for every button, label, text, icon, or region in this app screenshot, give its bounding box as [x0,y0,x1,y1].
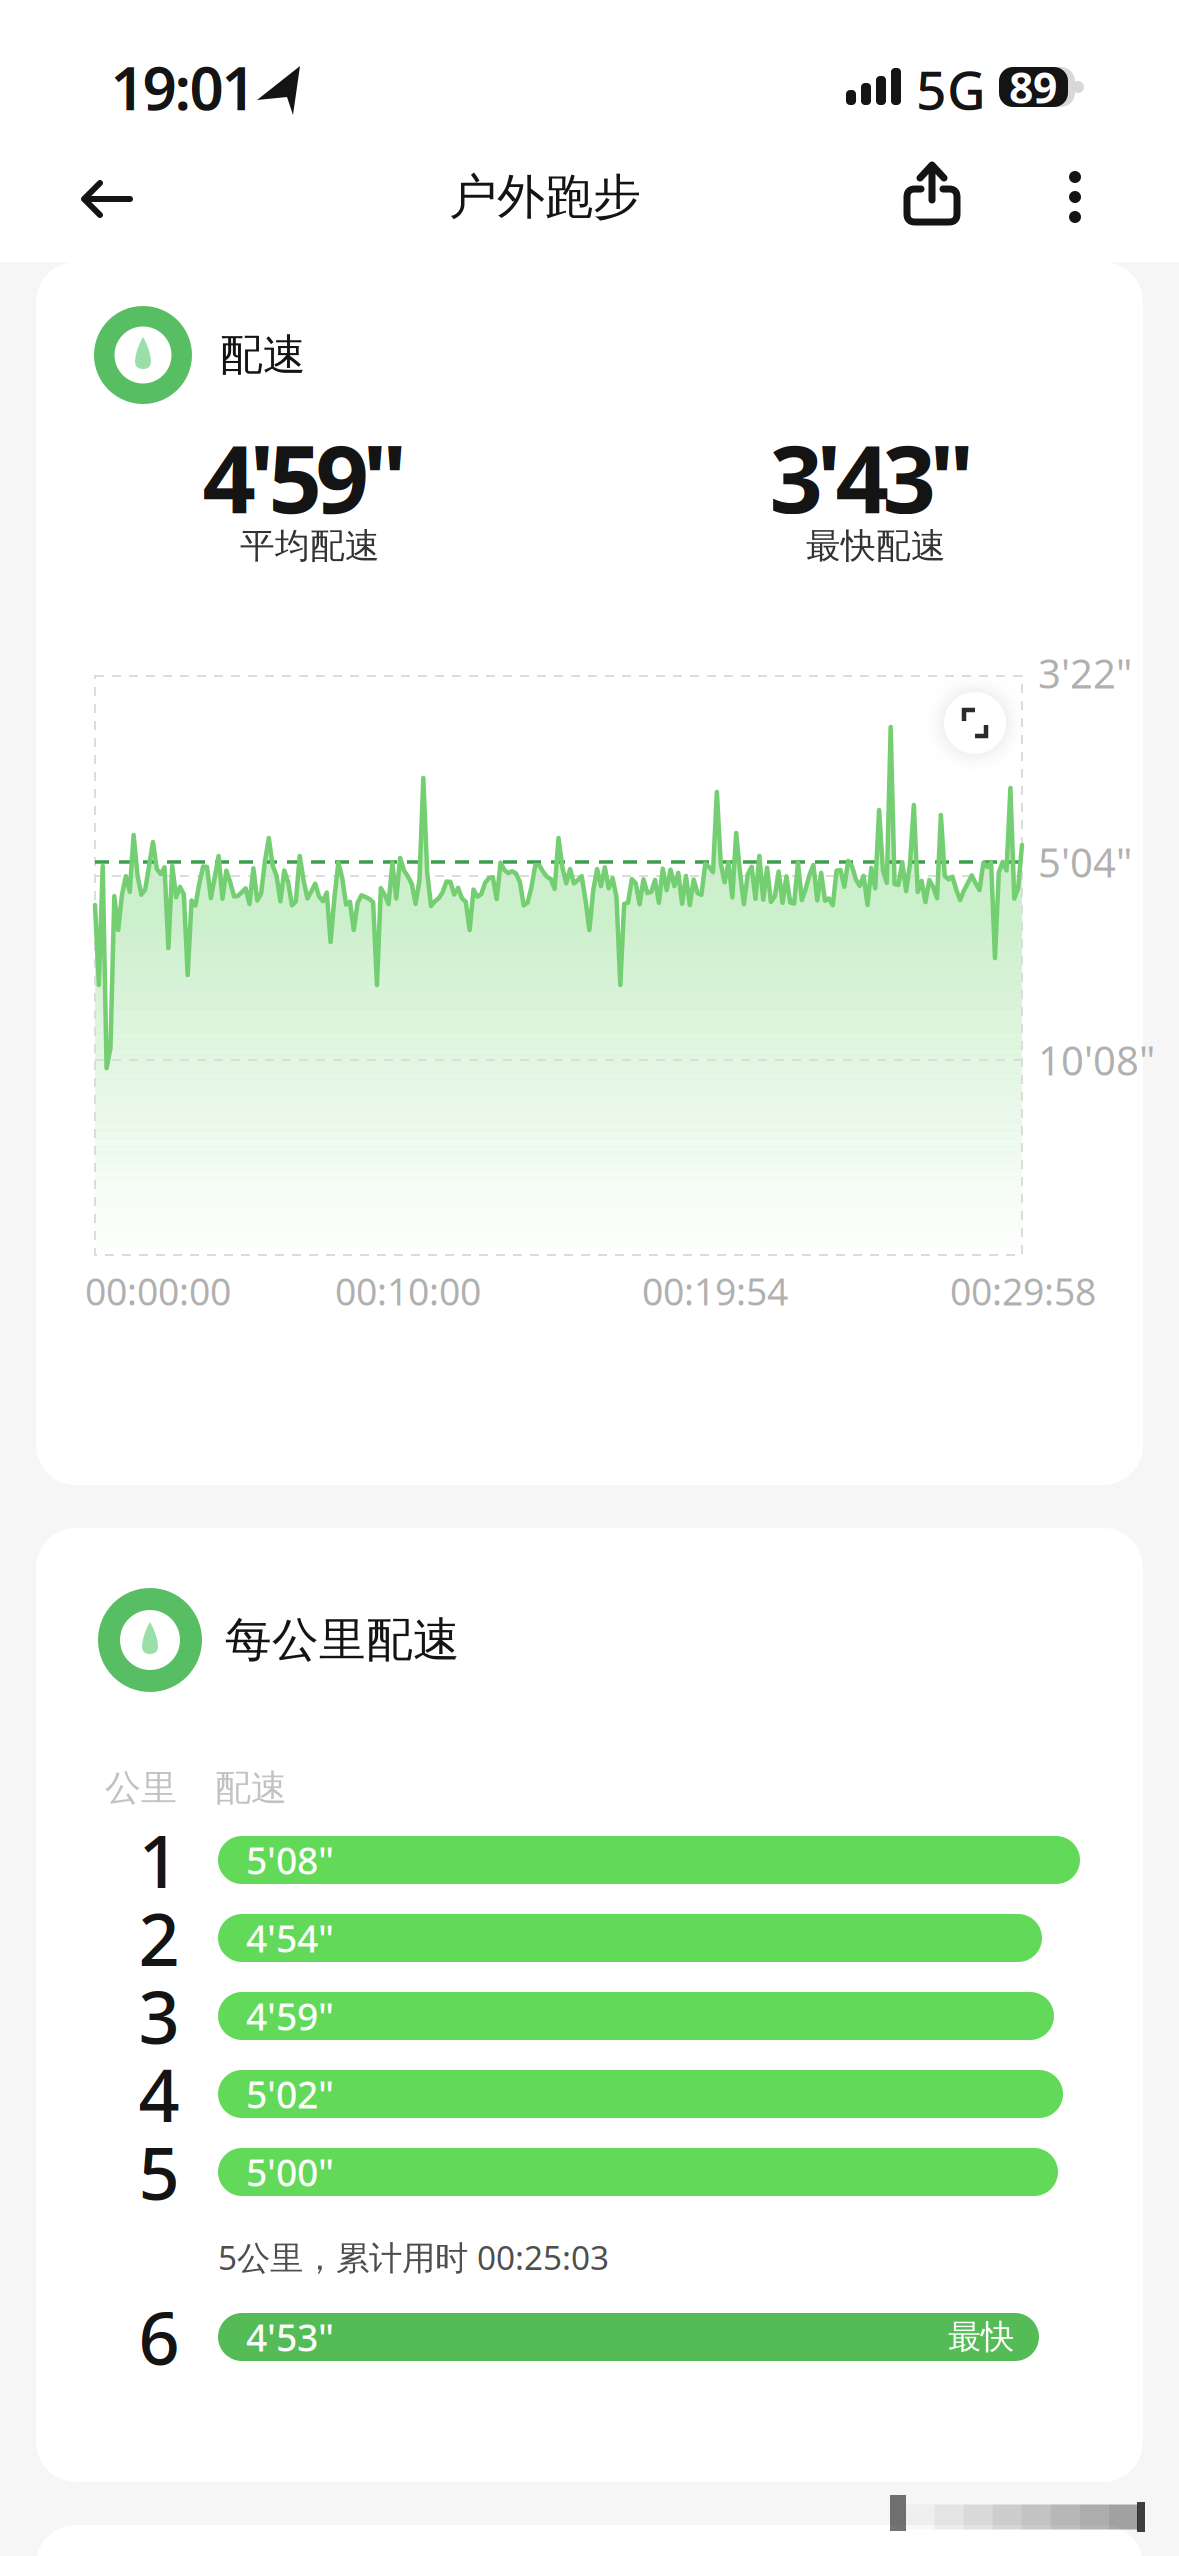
staticText: 5'00" [246,2147,334,2197]
staticText: 公里 [105,1766,177,1810]
staticText: 4'59" [246,1991,334,2041]
staticText: 4'59" [202,415,407,539]
staticText: 4'54" [246,1913,334,1963]
staticText: 配速 [220,329,306,381]
staticText: 配速 [215,1766,287,1810]
staticText: 户外跑步 [449,167,641,226]
staticText: 5'08" [246,1835,334,1885]
staticText: 00:29:58 [950,1266,1096,1316]
staticText: 5'02" [246,2069,334,2119]
staticText: 6 [138,2289,179,2385]
staticText: 10'08" [1038,1033,1155,1086]
staticText: 4'53" [246,2312,334,2362]
staticText: 00:00:00 [85,1266,231,1316]
staticText: 5公里，累计用时 00:25:03 [218,2235,609,2279]
staticText: 2 [138,1890,179,1986]
staticText: 3'43" [769,415,974,539]
staticText: 5'04" [1038,835,1132,888]
staticText: 平均配速 [240,525,380,567]
staticText: 00:10:00 [335,1266,481,1316]
staticText: 每公里配速 [225,1611,460,1669]
staticText: 4 [138,2046,179,2142]
staticText: 89 [1009,59,1057,115]
staticText: 00:19:54 [642,1266,788,1316]
button[interactable]: Back [62,159,152,239]
staticText: 最快配速 [806,525,946,567]
staticText: 3'22" [1038,646,1132,699]
button[interactable]: Share [882,144,982,244]
button[interactable]: More [1045,152,1105,242]
staticText: 5 [138,2124,179,2220]
staticText: 3 [138,1968,179,2064]
button[interactable]: Expand chart [944,692,1006,754]
staticText: 1 [138,1812,179,1908]
staticText: 19:01 [110,47,255,127]
staticText: 5G [916,54,986,124]
staticText: 最快 [948,2316,1014,2357]
